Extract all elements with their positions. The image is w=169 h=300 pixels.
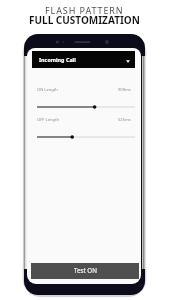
staticText: FLASH PATTERN: [45, 4, 124, 16]
button[interactable]: Incoming Call: [32, 51, 135, 68]
button[interactable]: ON Length: [37, 103, 135, 111]
button[interactable]: OFF Length: [37, 133, 135, 141]
staticText: FULL CUSTOMIZATION: [29, 13, 140, 27]
staticText: OFF Length: [37, 117, 60, 123]
staticText: Incoming Call: [39, 56, 76, 63]
staticText: 525ms: [118, 117, 131, 123]
staticText: ON Length: [37, 87, 58, 93]
button[interactable]: Test ON: [31, 263, 139, 279]
staticText: Test ON: [74, 266, 97, 274]
staticText: 908ms: [118, 87, 131, 93]
